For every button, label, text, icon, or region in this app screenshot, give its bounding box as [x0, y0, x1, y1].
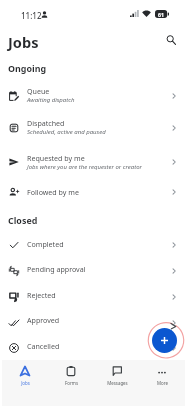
- button[interactable]: Jobs: [2, 366, 48, 386]
- staticText: Completed: [27, 239, 64, 249]
- staticText: Pending approval: [27, 264, 86, 274]
- button[interactable]: Followed by me: [0, 179, 187, 205]
- button[interactable]: Queue: [0, 83, 187, 109]
- staticText: Jobs: [21, 380, 30, 386]
- button[interactable]: Messages: [94, 366, 140, 386]
- staticText: Scheduled, active and paused: [27, 128, 106, 136]
- staticText: More: [157, 380, 168, 386]
- staticText: Ongoing: [8, 62, 47, 74]
- staticText: Dispatched: [27, 118, 65, 128]
- button[interactable]: Rejected: [0, 284, 187, 310]
- staticText: Approved: [27, 315, 60, 325]
- staticText: Closed: [8, 214, 38, 226]
- staticText: Followed by me: [27, 187, 79, 197]
- button[interactable]: Cancelled: [0, 335, 187, 361]
- button[interactable]: Completed: [0, 232, 187, 258]
- button[interactable]: Create job: [152, 328, 177, 353]
- button[interactable]: Search: [161, 30, 181, 50]
- button[interactable]: More: [139, 366, 185, 386]
- staticText: 11:12: [21, 10, 42, 21]
- staticText: Messages: [107, 380, 128, 386]
- button[interactable]: Dispatched: [0, 115, 187, 141]
- staticText: 61: [158, 11, 164, 18]
- staticText: Jobs where you are the requester or crea…: [27, 163, 142, 171]
- staticText: Requested by me: [27, 153, 85, 163]
- staticText: Rejected: [27, 290, 56, 300]
- staticText: Awaiting dispatch: [27, 96, 75, 104]
- staticText: Jobs: [8, 32, 39, 52]
- button[interactable]: Approved: [0, 310, 187, 336]
- button[interactable]: Forms: [48, 366, 94, 386]
- staticText: Queue: [27, 86, 50, 96]
- button[interactable]: Requested by me: [0, 149, 187, 175]
- staticText: Forms: [65, 380, 78, 386]
- staticText: Cancelled: [27, 341, 60, 351]
- button[interactable]: Pending approval: [0, 258, 187, 284]
